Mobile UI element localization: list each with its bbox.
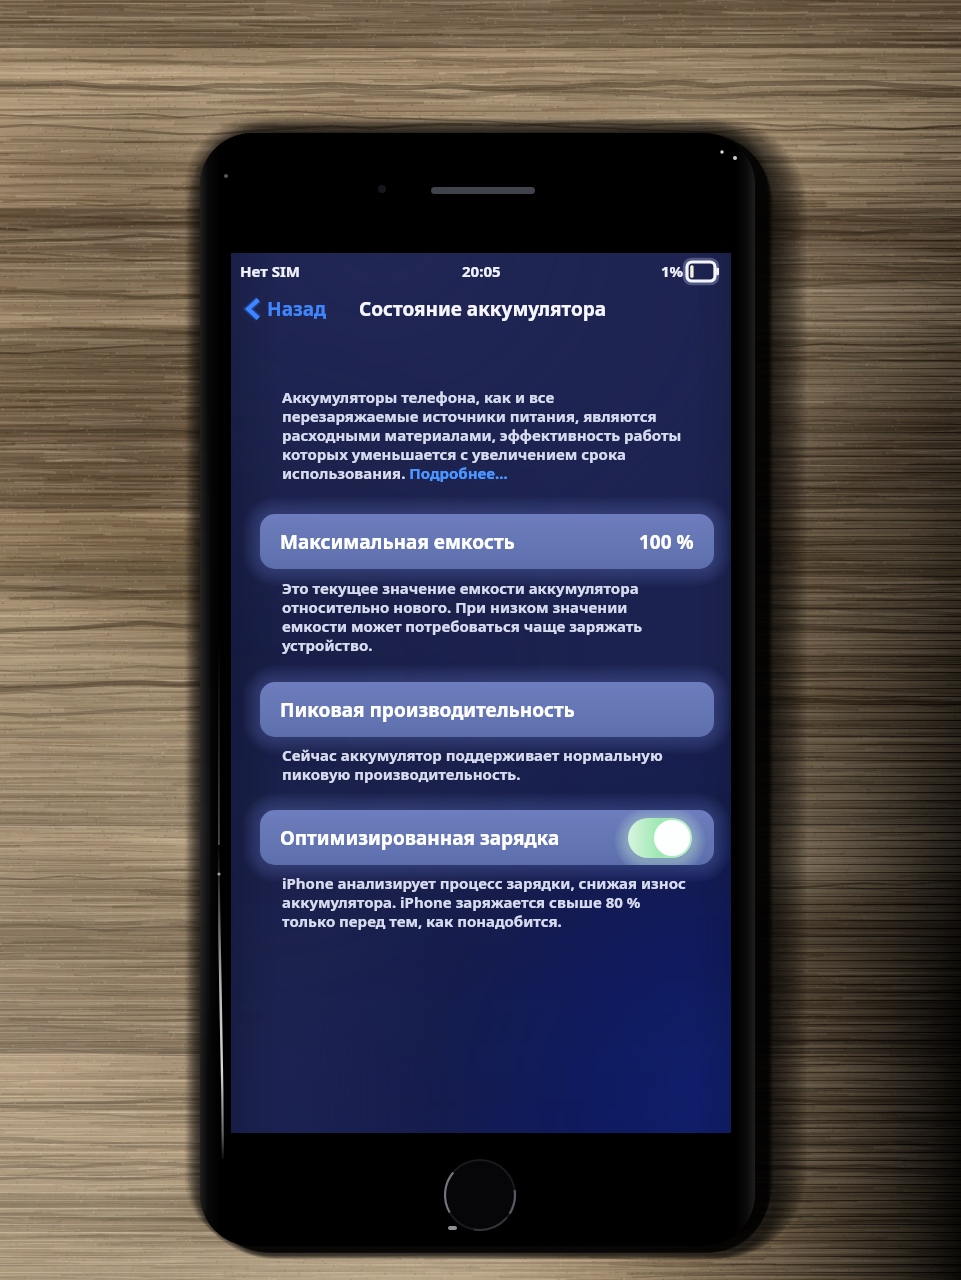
button[interactable]: Оптимизированная зарядка [260, 810, 714, 865]
staticText: Оптимизированная зарядка [280, 825, 560, 851]
button[interactable]: Пиковая производительность [260, 682, 714, 737]
staticText: Назад [267, 296, 327, 322]
staticText: iPhone анализирует процесс зарядки, сниж… [282, 873, 686, 932]
staticText: Нет SIM [240, 261, 300, 281]
button[interactable]: Home [443, 1158, 517, 1232]
staticText: Максимальная емкость [280, 529, 515, 555]
staticText: 20:05 [462, 261, 501, 281]
staticText: Максимальная емкость [280, 529, 515, 555]
staticText: Состояние аккумулятора [359, 296, 607, 322]
staticText: Нет SIM [240, 261, 300, 281]
staticText: iPhone анализирует процесс зарядки, сниж… [282, 873, 686, 932]
staticText: Это текущее значение емкости аккумулятор… [282, 578, 643, 656]
button[interactable]: Оптимизированная зарядка, включено [628, 818, 692, 858]
staticText: Сейчас аккумулятор поддерживает нормальн… [282, 745, 663, 785]
staticText: Пиковая производительность [280, 697, 575, 723]
button[interactable]: Максимальная емкость [260, 514, 714, 569]
staticText: 20:05 [462, 261, 501, 281]
staticText: Назад [267, 296, 327, 322]
staticText: 100 % [639, 529, 694, 555]
staticText: Сейчас аккумулятор поддерживает нормальн… [282, 745, 663, 785]
staticText: Состояние аккумулятора [359, 296, 607, 322]
staticText: 1% [661, 261, 684, 281]
staticText: Аккумуляторы телефона, как и все перезар… [282, 387, 682, 484]
button[interactable]: Назад [231, 289, 335, 329]
staticText: 1% [661, 261, 684, 281]
staticText: Аккумуляторы телефона, как и все перезар… [282, 387, 682, 484]
staticText: Пиковая производительность [280, 697, 575, 723]
staticText: Оптимизированная зарядка [280, 825, 560, 851]
staticText: 100 % [639, 529, 694, 555]
staticText: Это текущее значение емкости аккумулятор… [282, 578, 643, 656]
